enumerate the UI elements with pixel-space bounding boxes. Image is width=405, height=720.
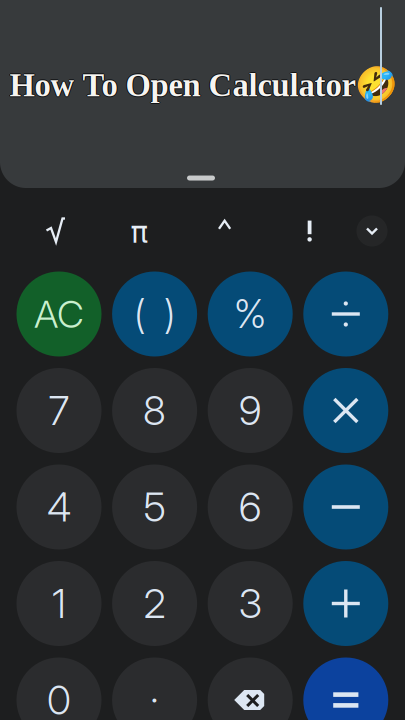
button[interactable]: Square root (28, 206, 84, 254)
button[interactable]: ( ) (112, 271, 197, 356)
staticText: How To Open Calculator🤣 (8, 66, 395, 104)
button[interactable] (303, 561, 388, 646)
button[interactable]: 6 (208, 464, 293, 549)
staticText: 5 (144, 483, 166, 531)
button[interactable]: More functions (356, 215, 387, 246)
staticText: How To Open Calculator🤣 (10, 66, 397, 104)
button[interactable]: π (109, 207, 169, 257)
staticText: ( ) (134, 291, 175, 337)
button[interactable]: 4 (16, 464, 101, 549)
staticText: How To Open Calculator🤣 (9, 67, 396, 105)
button[interactable]: Factorial (282, 206, 338, 254)
staticText: AC (34, 291, 84, 337)
staticText: 9 (239, 386, 262, 435)
button[interactable]: AC (16, 271, 101, 356)
staticText: How To Open Calculator🤣 (9, 65, 396, 103)
staticText: 1 (52, 579, 66, 628)
button[interactable]: · (112, 657, 197, 720)
staticText: 2 (144, 579, 166, 628)
button[interactable]: 9 (208, 368, 293, 453)
staticText: 3 (239, 579, 262, 628)
button[interactable]: 5 (112, 464, 197, 549)
button[interactable]: 1 (16, 561, 101, 646)
button[interactable]: Exponent (197, 201, 253, 249)
button[interactable] (208, 657, 293, 720)
staticText: % (234, 291, 267, 337)
button[interactable]: % (208, 271, 293, 356)
staticText: π (130, 215, 148, 249)
button[interactable]: 0 (16, 657, 101, 720)
button[interactable] (303, 464, 388, 549)
staticText: 7 (48, 386, 69, 435)
button[interactable]: 3 (208, 561, 293, 646)
button[interactable]: 8 (112, 368, 197, 453)
staticText: 0 (47, 676, 71, 720)
button[interactable] (303, 657, 388, 720)
button[interactable] (303, 368, 388, 453)
staticText: 6 (239, 483, 262, 531)
button[interactable]: 2 (112, 561, 197, 646)
button[interactable]: 7 (16, 368, 101, 453)
staticText: 4 (47, 483, 71, 531)
staticText: 8 (143, 386, 166, 435)
button[interactable] (303, 271, 388, 356)
staticText: · (150, 676, 159, 720)
staticText: How To Open Calculator🤣 (9, 66, 396, 104)
